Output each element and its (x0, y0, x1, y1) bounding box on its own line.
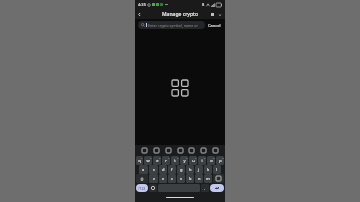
button[interactable]: s (149, 165, 158, 174)
staticText: 3 (159, 156, 161, 159)
button[interactable]: Theme (199, 146, 208, 155)
button[interactable]: k (204, 165, 212, 174)
staticText: r (165, 158, 167, 163)
staticText: 7 (195, 156, 197, 159)
button[interactable]: i (198, 156, 206, 165)
button[interactable]: . (201, 184, 209, 192)
staticText: b (189, 176, 192, 181)
staticText: t (174, 158, 176, 163)
staticText: s (153, 167, 155, 172)
button[interactable]: ?123 (136, 184, 148, 192)
staticText: . (204, 186, 206, 191)
staticText: k (207, 167, 210, 172)
button[interactable]: Cancel (207, 21, 222, 30)
staticText: 5 (177, 156, 179, 159)
staticText: 0 (222, 156, 224, 159)
staticText: 2 (150, 156, 152, 159)
button[interactable]: b (186, 174, 194, 183)
staticText: 8 (202, 2, 205, 7)
button[interactable]: t (171, 156, 179, 165)
staticText: q (138, 158, 141, 163)
staticText: d (162, 167, 165, 172)
button[interactable]: Enter (210, 184, 224, 192)
button[interactable]: Shift (136, 174, 148, 183)
staticText: 8 (204, 156, 206, 159)
staticText: 1 (141, 156, 143, 159)
staticText: Manage crypto (162, 11, 198, 18)
staticText: e (156, 158, 159, 163)
button[interactable]: m (204, 174, 212, 183)
button[interactable]: Backspace (213, 174, 224, 183)
button[interactable]: Sticker (176, 146, 185, 155)
staticText: p (219, 158, 222, 163)
staticText: 4 (168, 156, 170, 159)
button[interactable]: j (195, 165, 203, 174)
button[interactable]: Voice (211, 146, 220, 155)
staticText: c (171, 176, 173, 181)
staticText: x (162, 176, 165, 181)
staticText: i (201, 158, 203, 163)
staticText: 9 (213, 156, 215, 159)
button[interactable]: o (207, 156, 215, 165)
button[interactable]: q (136, 156, 143, 165)
button[interactable]: Filter (209, 11, 216, 18)
button[interactable]: d (159, 165, 167, 174)
button[interactable]: z (149, 174, 158, 183)
staticText: f (171, 167, 173, 172)
button[interactable]: Emoji (149, 184, 157, 192)
button[interactable]: Back (135, 10, 144, 19)
staticText: y (183, 158, 186, 163)
button[interactable]: Clipboard (140, 146, 149, 155)
button[interactable]: x (159, 174, 167, 183)
staticText: v (180, 176, 183, 181)
staticText: ?123 (138, 186, 146, 191)
staticText: n (198, 176, 201, 181)
staticText: h (189, 167, 192, 172)
staticText: w (146, 158, 150, 163)
button[interactable]: y (180, 156, 188, 165)
staticText: Cancel (208, 23, 221, 28)
staticText: g (180, 167, 183, 172)
button[interactable]: Enter crypto symbol, name or address (138, 21, 205, 29)
button[interactable]: Settings (187, 146, 196, 155)
staticText: Enter crypto symbol, name or address (148, 23, 202, 28)
button[interactable]: u (189, 156, 197, 165)
button[interactable]: f (168, 165, 176, 174)
staticText: l (216, 167, 218, 172)
button[interactable]: e (153, 156, 161, 165)
button[interactable]: v (177, 174, 185, 183)
staticText: m (206, 176, 210, 181)
button[interactable]: g (177, 165, 185, 174)
staticText: u (192, 158, 195, 163)
staticText: 6 (186, 156, 188, 159)
button[interactable]: c (168, 174, 176, 183)
staticText: z (153, 176, 155, 181)
button[interactable]: h (186, 165, 194, 174)
staticText: j (198, 167, 200, 172)
button[interactable]: l (213, 165, 221, 174)
button[interactable]: r (162, 156, 170, 165)
button[interactable]: More (216, 11, 223, 18)
button[interactable]: n (195, 174, 203, 183)
button[interactable]: a (139, 165, 148, 174)
button[interactable]: p (216, 156, 224, 165)
staticText: 4:35 (138, 2, 146, 7)
button[interactable]: Translate (164, 146, 173, 155)
button[interactable]: w (144, 156, 152, 165)
staticText: a (142, 167, 145, 172)
button[interactable]: GIF (152, 146, 161, 155)
staticText: o (210, 158, 213, 163)
